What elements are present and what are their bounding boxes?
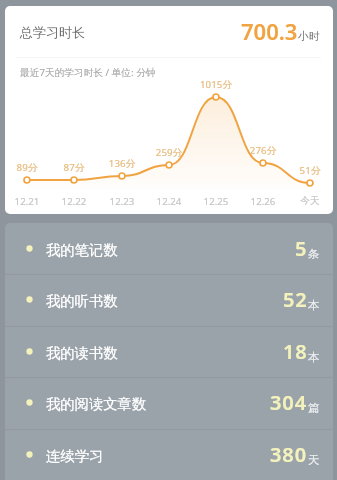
staticText: 总学习时长 [20,24,85,40]
staticText: 89分 [5,161,49,174]
staticText: 12.26 [241,195,285,208]
button[interactable]: 我的读书数 [5,326,333,377]
staticText: 136分 [100,157,144,170]
staticText: 18 [283,338,308,365]
staticText: 篇 [308,401,320,415]
staticText: 条 [308,247,320,261]
staticText: 1015分 [194,78,238,91]
staticText: 小时 [298,30,320,44]
staticText: 304 [270,389,308,416]
staticText: 87分 [52,161,96,174]
button[interactable]: 我的笔记数 [5,223,333,274]
staticText: 天 [308,453,320,467]
staticText: 连续学习 [46,447,104,465]
staticText: 700.3 [241,16,298,46]
staticText: 12.23 [100,195,144,208]
staticText: 259分 [147,146,191,159]
staticText: 276分 [241,144,285,157]
staticText: 今天 [288,195,332,207]
staticText: 12.21 [5,195,49,208]
staticText: 最近7天的学习时长 / 单位: 分钟 [20,66,156,79]
staticText: 52 [283,286,308,313]
button[interactable]: 连续学习 [5,429,333,480]
staticText: 我的笔记数 [46,241,118,259]
button[interactable]: 我的阅读文章数 [5,377,333,428]
staticText: 12.22 [52,195,96,208]
staticText: 380 [270,441,308,468]
staticText: 5 [295,235,308,262]
staticText: 12.24 [147,195,191,208]
staticText: 12.25 [194,195,238,208]
staticText: 51分 [288,164,332,177]
button[interactable]: 我的听书数 [5,274,333,325]
staticText: 本 [308,298,320,312]
staticText: 本 [308,350,320,364]
staticText: 我的读书数 [46,344,118,362]
staticText: 我的阅读文章数 [46,395,147,413]
staticText: 我的听书数 [46,292,118,310]
